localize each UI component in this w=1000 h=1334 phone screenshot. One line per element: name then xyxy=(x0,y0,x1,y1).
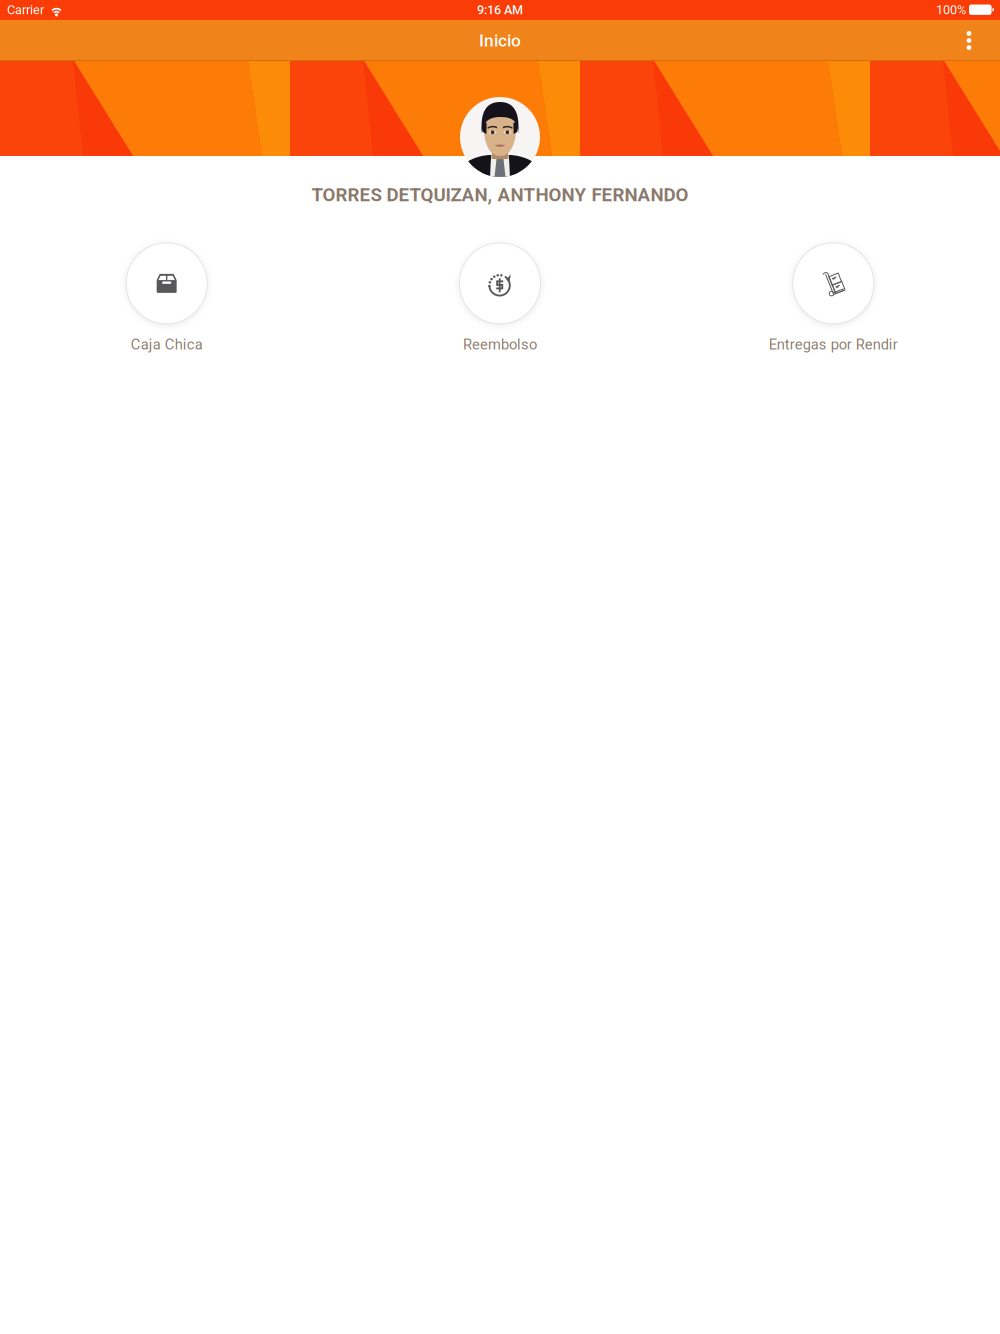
staticText: TORRES DETQUIZAN, ANTHONY FERNANDO xyxy=(311,184,688,206)
staticText: Caja Chica xyxy=(131,336,203,353)
staticText: Entregas por Rendir xyxy=(769,336,898,353)
staticText: 100% xyxy=(936,3,966,17)
staticText: Carrier xyxy=(7,3,44,17)
button[interactable]: Entregas por Rendir xyxy=(667,243,1000,353)
button[interactable]: Reembolso xyxy=(333,243,667,353)
button[interactable]: More options xyxy=(938,20,1000,61)
staticText: 9:16 AM xyxy=(477,3,523,17)
staticText: Inicio xyxy=(479,30,521,51)
button[interactable]: Caja Chica xyxy=(0,243,333,353)
staticText: Reembolso xyxy=(463,336,537,353)
